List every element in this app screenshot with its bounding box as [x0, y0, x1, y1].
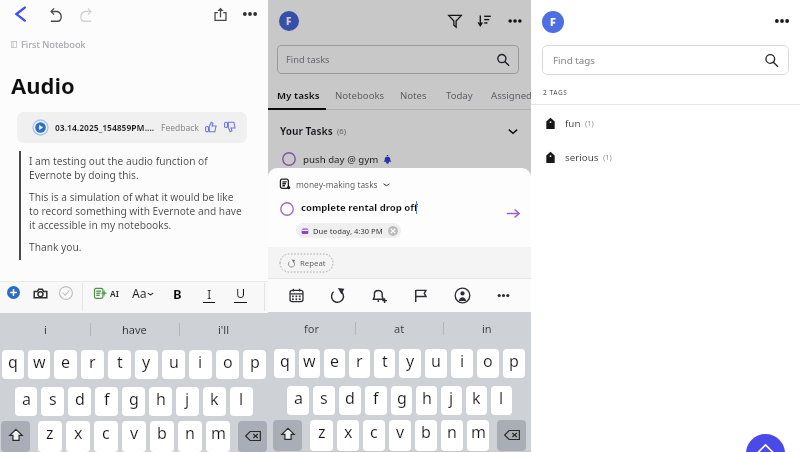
button[interactable]: U	[234, 285, 248, 299]
button[interactable]: money-making tasks	[279, 178, 390, 190]
button[interactable]: Back	[11, 4, 31, 24]
button[interactable]: p	[503, 349, 525, 378]
button[interactable]: z	[38, 421, 62, 452]
button[interactable]: i	[0, 313, 90, 345]
button[interactable]: have	[90, 313, 179, 345]
button[interactable]: s	[313, 386, 335, 415]
button[interactable]: h	[416, 386, 437, 415]
button[interactable]: Thumbs up	[205, 121, 217, 133]
button[interactable]: at	[355, 312, 443, 344]
button[interactable]: push day @ gym	[282, 152, 392, 166]
button[interactable]: e	[324, 349, 345, 378]
button[interactable]: m	[467, 420, 489, 451]
button[interactable]: c	[94, 421, 118, 452]
button[interactable]: m	[206, 421, 230, 452]
button[interactable]: j	[441, 386, 462, 415]
button[interactable]: o	[477, 349, 499, 378]
button[interactable]: q	[274, 349, 295, 378]
button[interactable]: o	[216, 350, 239, 379]
button[interactable]: More options	[773, 12, 791, 30]
button[interactable]: for	[268, 312, 355, 344]
button[interactable]: AI assist	[93, 286, 119, 301]
button[interactable]: Thumbs down	[224, 121, 236, 133]
button[interactable]: New note	[746, 434, 785, 452]
button[interactable]: s	[41, 387, 64, 416]
button[interactable]: g	[122, 387, 145, 416]
button[interactable]: Find tags	[542, 45, 789, 75]
button[interactable]: t	[374, 349, 395, 378]
button[interactable]: u	[162, 350, 185, 379]
button[interactable]: f	[95, 387, 118, 416]
button[interactable]: Due today, 4:30 PM	[296, 223, 401, 238]
button[interactable]: v	[122, 421, 146, 452]
button[interactable]: a	[15, 387, 37, 416]
button[interactable]: v	[389, 420, 411, 451]
button[interactable]: l	[491, 386, 512, 415]
button[interactable]: b	[150, 421, 174, 452]
button[interactable]: Text size	[132, 285, 154, 301]
button[interactable]: i'll	[179, 313, 268, 345]
button[interactable]: z	[310, 420, 333, 451]
button[interactable]: Shift	[1, 421, 30, 452]
button[interactable]: c	[363, 420, 385, 451]
button[interactable]: Repeat	[280, 254, 333, 272]
button[interactable]: w	[299, 349, 320, 378]
button[interactable]: Your Tasks	[280, 124, 520, 138]
button[interactable]: serious	[531, 146, 800, 168]
button[interactable]: 03.14.2025_154859PM....	[17, 112, 247, 143]
button[interactable]: Undo	[49, 7, 63, 22]
button[interactable]: Shift	[273, 420, 302, 451]
button[interactable]: j	[176, 387, 199, 416]
button[interactable]: My tasks	[277, 89, 320, 102]
button[interactable]: x	[337, 420, 359, 451]
button[interactable]: x	[66, 421, 90, 452]
button[interactable]: Assign	[454, 287, 471, 304]
button[interactable]: Save task	[506, 206, 521, 221]
button[interactable]: More options	[495, 287, 512, 304]
button[interactable]: Redo	[79, 7, 93, 22]
button[interactable]: Checklist	[59, 286, 73, 300]
button[interactable]: a	[287, 386, 309, 415]
button[interactable]: q	[2, 350, 24, 379]
button[interactable]: f	[365, 386, 387, 415]
button[interactable]: d	[68, 387, 91, 416]
button[interactable]: Remove due date	[388, 226, 398, 236]
button[interactable]: l	[230, 387, 253, 416]
button[interactable]: Flag	[412, 287, 429, 304]
button[interactable]: i	[451, 349, 473, 378]
button[interactable]: g	[391, 386, 412, 415]
button[interactable]: Reminder	[371, 287, 388, 304]
button[interactable]: u	[425, 349, 447, 378]
button[interactable]: k	[203, 387, 226, 416]
button[interactable]: Assigned	[491, 89, 532, 102]
button[interactable]: t	[108, 350, 131, 379]
button[interactable]: First Notebook	[9, 36, 88, 53]
button[interactable]: d	[339, 386, 361, 415]
button[interactable]: p	[243, 350, 266, 379]
button[interactable]: n	[178, 421, 202, 452]
button[interactable]: Sort	[477, 13, 492, 28]
button[interactable]: Notes	[400, 89, 427, 102]
button[interactable]: Due date	[288, 287, 305, 304]
button[interactable]: F	[542, 11, 564, 33]
button[interactable]: Backspace	[497, 420, 526, 451]
button[interactable]: F	[279, 11, 299, 31]
button[interactable]: Repeat	[329, 287, 346, 304]
button[interactable]: w	[28, 350, 50, 379]
button[interactable]: in	[443, 312, 531, 344]
button[interactable]: n	[441, 420, 463, 451]
button[interactable]: r	[349, 349, 370, 378]
button[interactable]: B	[170, 285, 184, 299]
button[interactable]: Backspace	[238, 421, 267, 452]
button[interactable]: I	[202, 285, 216, 299]
button[interactable]: Find tasks	[277, 45, 519, 74]
button[interactable]: fun	[531, 112, 800, 134]
button[interactable]: r	[81, 350, 104, 379]
button[interactable]: Camera	[33, 286, 48, 301]
button[interactable]: k	[466, 386, 487, 415]
button[interactable]: e	[54, 350, 77, 379]
button[interactable]: Share	[214, 7, 227, 21]
button[interactable]: b	[415, 420, 437, 451]
button[interactable]: y	[135, 350, 158, 379]
button[interactable]: Filter	[448, 14, 462, 28]
